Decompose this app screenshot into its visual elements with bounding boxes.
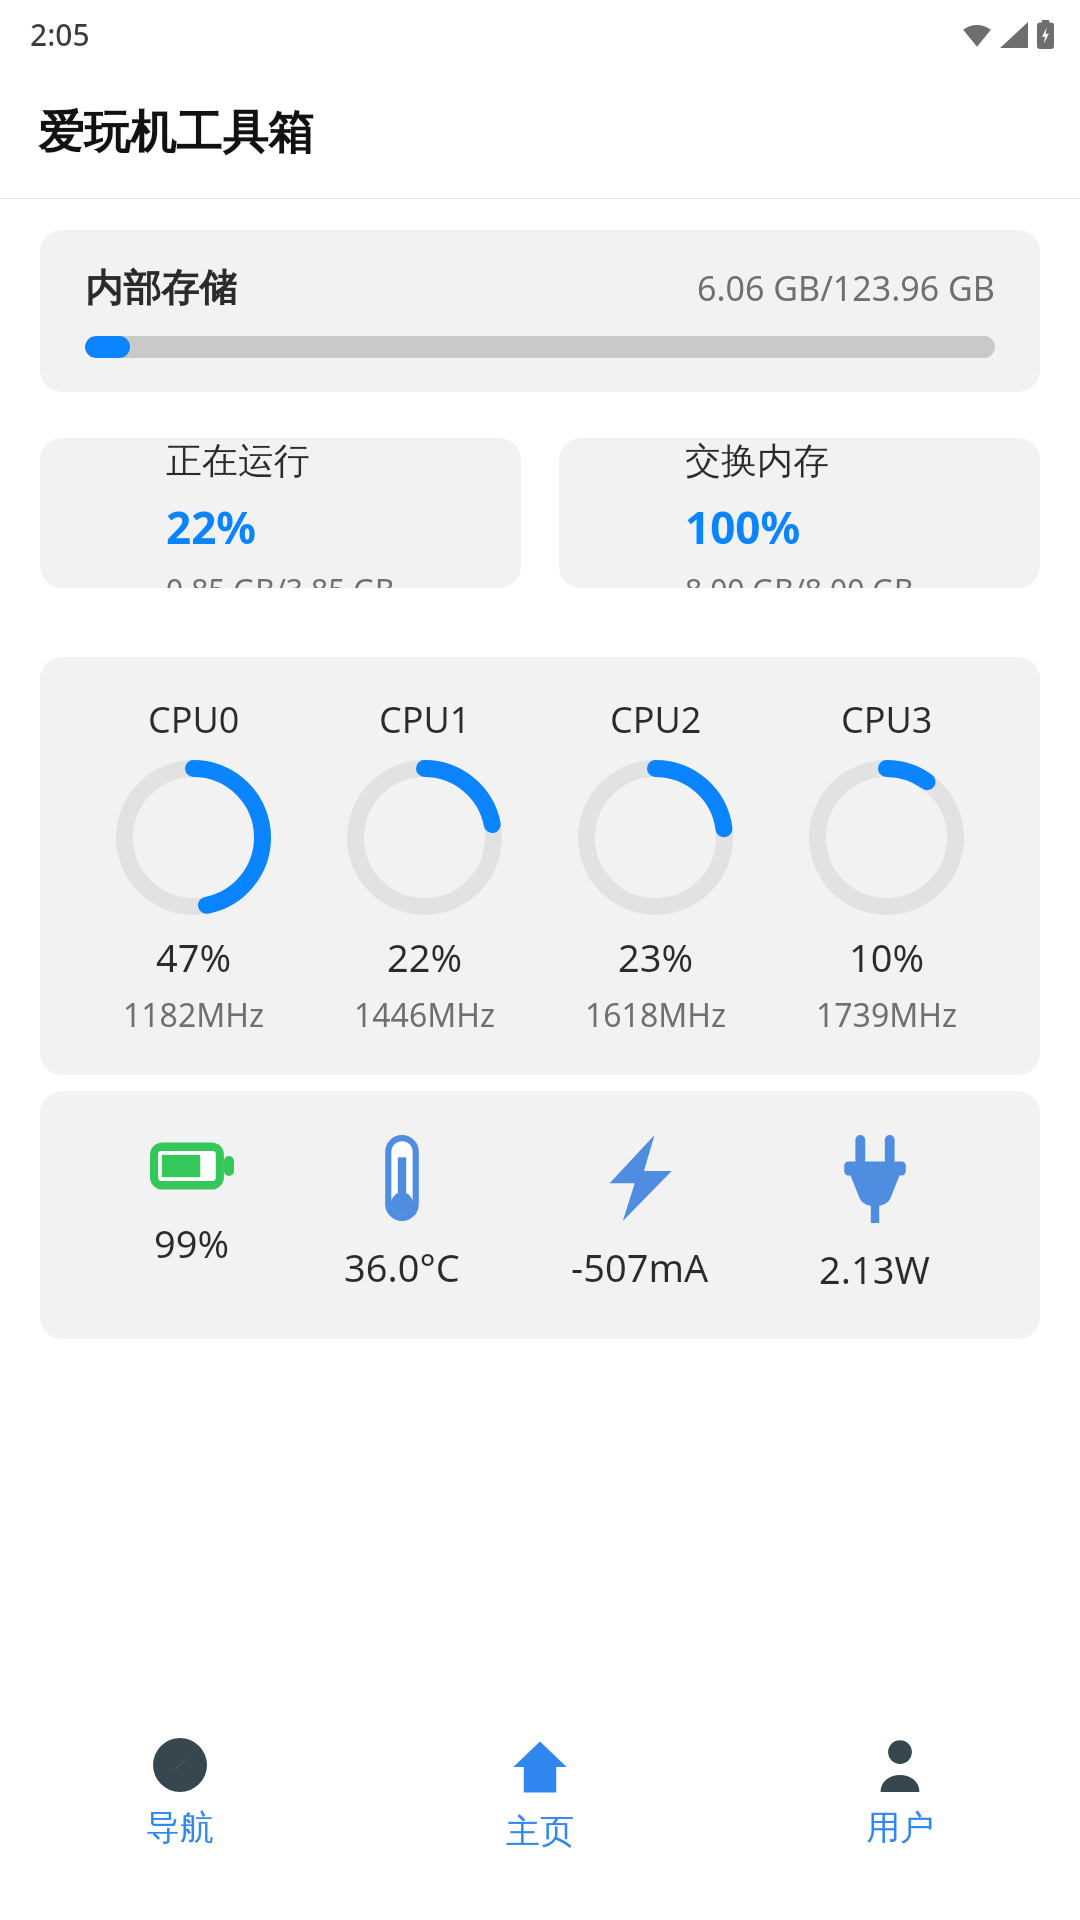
staticText: 47%: [156, 931, 232, 983]
button[interactable]: 导航: [0, 1732, 360, 1855]
other: 导航: [153, 1738, 207, 1792]
staticText: 36.0°C: [344, 1241, 460, 1293]
staticText: 正在运行: [166, 438, 310, 483]
button[interactable]: CPU0: [40, 657, 1040, 1075]
button[interactable]: 正在运行: [40, 438, 521, 588]
staticText: 2.13W: [819, 1243, 930, 1295]
staticText: -507mA: [571, 1241, 709, 1293]
button[interactable]: 主页: [360, 1732, 720, 1859]
staticText: CPU0: [148, 695, 240, 744]
staticText: 内部存储: [85, 264, 237, 312]
staticText: 主页: [506, 1810, 574, 1853]
other: 主页: [511, 1738, 569, 1796]
staticText: 1739MHz: [816, 993, 957, 1037]
button[interactable]: 内部存储: [40, 230, 1040, 392]
staticText: 8.00 GB/8.00 GB: [685, 569, 914, 588]
staticText: 1182MHz: [123, 993, 264, 1037]
staticText: 10%: [849, 931, 925, 983]
staticText: 23%: [618, 931, 694, 983]
staticText: 22%: [166, 497, 257, 557]
button[interactable]: 交换内存: [559, 438, 1040, 588]
staticText: 99%: [154, 1217, 230, 1269]
staticText: 1618MHz: [585, 993, 726, 1037]
staticText: 6.06 GB/123.96 GB: [697, 265, 995, 311]
staticText: 导航: [146, 1806, 214, 1849]
staticText: 1446MHz: [354, 993, 495, 1037]
staticText: 22%: [387, 931, 463, 983]
staticText: 2:05: [30, 14, 90, 55]
staticText: 0.85 GB/3.85 GB: [166, 569, 395, 588]
other: 用户: [873, 1738, 927, 1792]
staticText: CPU2: [610, 695, 702, 744]
staticText: 100%: [685, 497, 801, 557]
button[interactable]: 99%: [40, 1091, 1040, 1339]
staticText: 爱玩机工具箱: [38, 104, 314, 162]
button[interactable]: 用户: [720, 1732, 1080, 1855]
staticText: 交换内存: [685, 438, 829, 483]
staticText: CPU1: [379, 695, 471, 744]
staticText: CPU3: [841, 695, 933, 744]
staticText: 用户: [866, 1806, 934, 1849]
